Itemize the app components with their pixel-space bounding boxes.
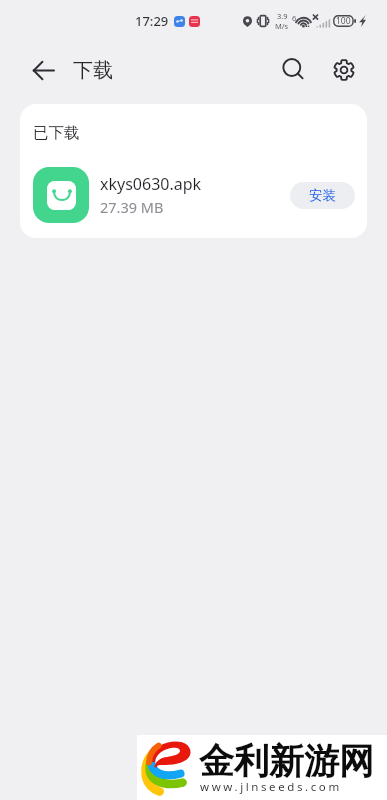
staticText: 金利新游网 xyxy=(199,739,374,783)
staticText: www.jlnseeds.com xyxy=(200,779,342,795)
staticText: 3.9 xyxy=(277,11,288,21)
staticText: 17:29 xyxy=(135,12,169,30)
button[interactable]: Back xyxy=(28,54,58,86)
staticText: 6 xyxy=(292,13,297,23)
button[interactable]: xkys0630.apk xyxy=(20,167,367,223)
staticText: 已下载 xyxy=(33,123,80,143)
staticText: xkys0630.apk xyxy=(100,173,202,195)
staticText: 下载 xyxy=(73,58,113,83)
button[interactable]: Settings xyxy=(327,53,361,87)
staticText: 27.39 MB xyxy=(100,197,164,217)
staticText: 安装 xyxy=(309,187,336,204)
staticText: 100 xyxy=(336,15,351,27)
button[interactable]: 安装 xyxy=(290,182,355,209)
staticText: M/s xyxy=(275,21,289,31)
button[interactable]: Search xyxy=(277,53,311,87)
